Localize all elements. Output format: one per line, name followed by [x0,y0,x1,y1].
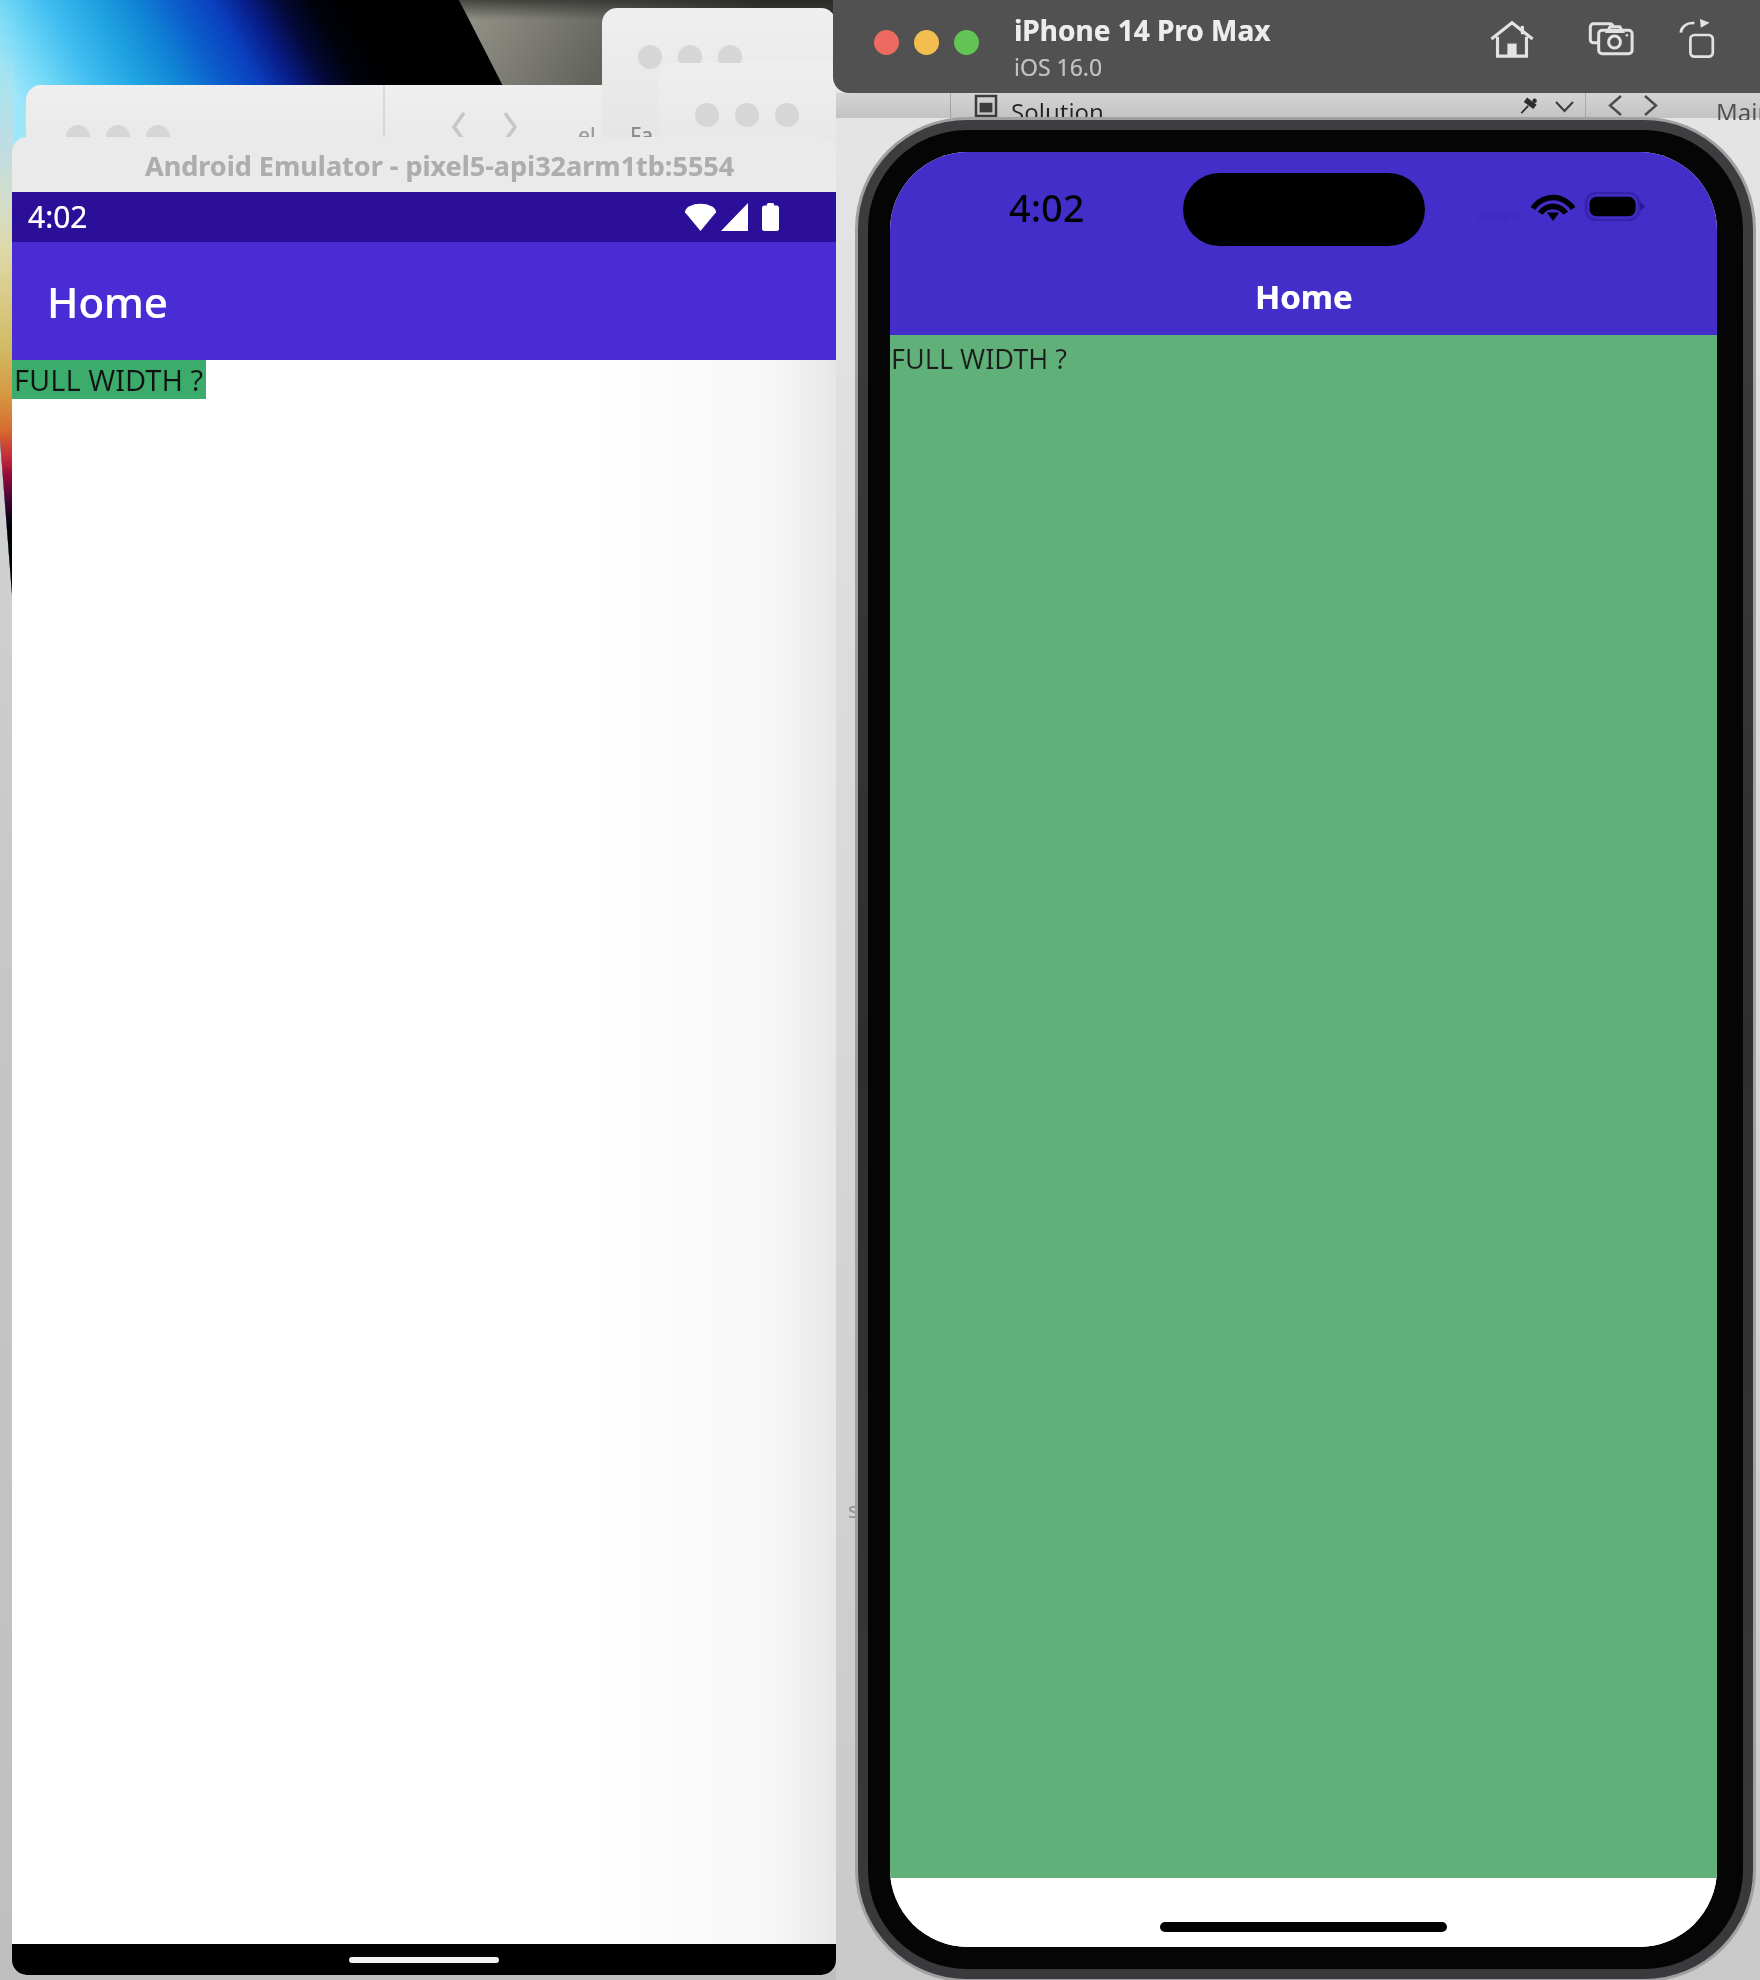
button[interactable]: Close window [874,30,899,55]
staticText: 4:02 [1009,181,1085,233]
staticText: iPhone 14 Pro Max [1014,11,1271,49]
button[interactable]: Home [12,242,836,360]
staticText: el [578,121,596,150]
staticText: iOS 16.0 [1014,51,1103,82]
button[interactable]: Minimize window [914,30,939,55]
staticText: 4:02 [28,196,88,237]
staticText: FULL WIDTH ? [891,340,1067,377]
staticText: a [1714,1428,1726,1457]
staticText: a [1714,1528,1726,1557]
staticText: Fa [630,121,654,150]
button[interactable]: Screenshot [1582,10,1640,68]
staticText: Home [47,273,168,330]
staticText: s [1714,1478,1725,1507]
button[interactable]: Home [1483,10,1541,68]
button[interactable]: Rotate [1671,10,1729,68]
staticText: Solution [1011,95,1104,120]
staticText: Home [1255,274,1353,319]
staticText: Android Emulator - pixel5-api32arm1tb:55… [145,147,735,184]
staticText: FULL WIDTH ? [14,360,204,399]
staticText: Main [1716,95,1760,120]
staticText: ssr [848,1496,877,1525]
button[interactable]: Maximize window [954,30,979,55]
